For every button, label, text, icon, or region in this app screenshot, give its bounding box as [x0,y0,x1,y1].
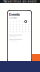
staticText: October [9,17,17,19]
staticText: Events [9,12,20,17]
staticText: Never miss an event [3,0,36,3]
button[interactable]: Never miss an event [0,0,40,3]
